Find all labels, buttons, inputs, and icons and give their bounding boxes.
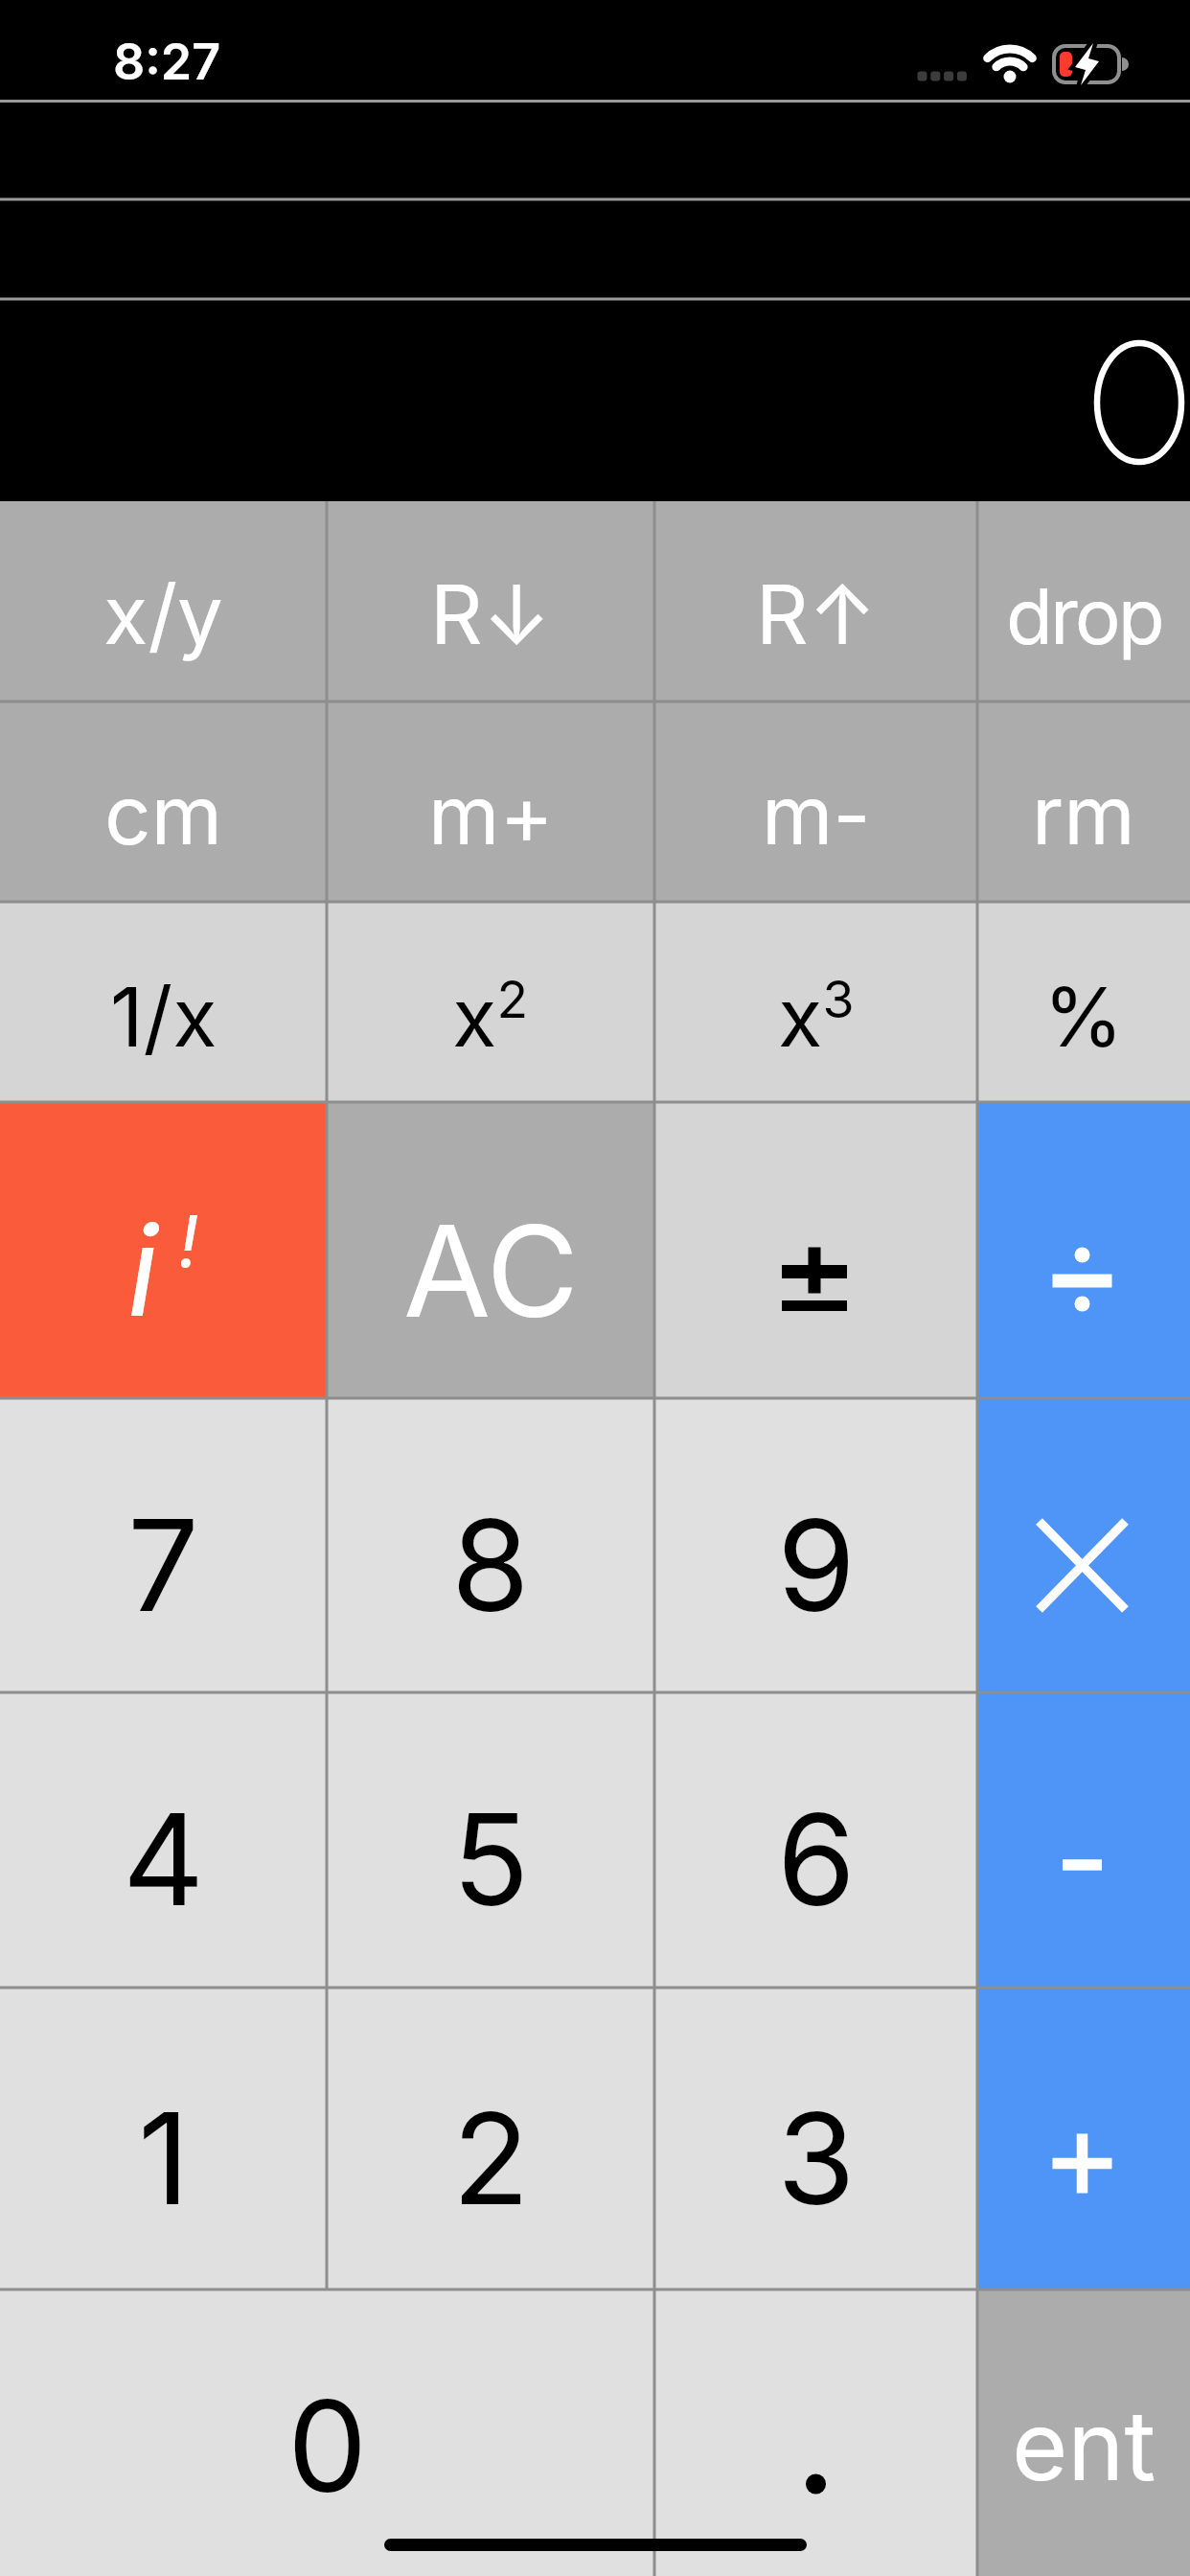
staticText: 9 bbox=[777, 1488, 856, 1642]
button[interactable] bbox=[977, 1692, 1190, 1988]
staticText: R↑ bbox=[756, 565, 877, 664]
staticText: 8:27 bbox=[113, 32, 221, 92]
button[interactable]: m+ bbox=[327, 701, 654, 902]
staticText: 8 bbox=[451, 1488, 530, 1642]
button[interactable]: 4 bbox=[0, 1692, 327, 1988]
staticText: AC bbox=[403, 1194, 579, 1347]
button[interactable]: 9 bbox=[654, 1398, 977, 1692]
staticText: % bbox=[1043, 968, 1124, 1067]
button[interactable]: ent bbox=[977, 2289, 1190, 2576]
button[interactable] bbox=[654, 1102, 977, 1398]
button[interactable]: AC bbox=[327, 1102, 654, 1398]
button[interactable]: cm bbox=[0, 701, 327, 902]
staticText: 7 bbox=[127, 1488, 199, 1642]
button[interactable]: 5 bbox=[327, 1692, 654, 1988]
staticText: x/y bbox=[103, 565, 223, 664]
button[interactable]: 1/x bbox=[0, 902, 327, 1102]
staticText: 4 bbox=[123, 1782, 205, 1936]
staticText: 2 bbox=[452, 2081, 530, 2235]
staticText: drop bbox=[1006, 569, 1162, 662]
staticText: 5 bbox=[452, 1782, 530, 1936]
button[interactable] bbox=[977, 1398, 1190, 1692]
button[interactable]: R↓ bbox=[327, 501, 654, 701]
button[interactable]: rm bbox=[977, 701, 1190, 902]
staticText: R↓ bbox=[430, 565, 551, 664]
button[interactable]: 0 bbox=[0, 2289, 654, 2576]
button[interactable] bbox=[977, 1102, 1190, 1398]
button[interactable]: 1 bbox=[0, 1988, 327, 2289]
button[interactable]: R↑ bbox=[654, 501, 977, 701]
button[interactable]: % bbox=[977, 902, 1190, 1102]
staticText: 1/x bbox=[110, 968, 217, 1067]
button[interactable]: 7 bbox=[0, 1398, 327, 1692]
staticText: 0 bbox=[287, 2369, 368, 2522]
staticText: 3 bbox=[777, 2081, 856, 2235]
button[interactable]: x3 bbox=[654, 902, 977, 1102]
button[interactable]: x2 bbox=[327, 902, 654, 1102]
staticText: m+ bbox=[428, 766, 554, 864]
button[interactable]: 3 bbox=[654, 1988, 977, 2289]
staticText: x3 bbox=[778, 968, 855, 1067]
button[interactable] bbox=[654, 2289, 977, 2576]
staticText: ent bbox=[1012, 2387, 1156, 2503]
button[interactable]: 8 bbox=[327, 1398, 654, 1692]
button[interactable]: 2 bbox=[327, 1988, 654, 2289]
staticText: 6 bbox=[777, 1782, 856, 1936]
staticText: 1 bbox=[138, 2081, 190, 2235]
staticText: cm bbox=[104, 766, 223, 864]
staticText: i ! bbox=[127, 1195, 199, 1345]
staticText: x2 bbox=[452, 968, 529, 1067]
button[interactable] bbox=[977, 1988, 1190, 2289]
button[interactable]: 6 bbox=[654, 1692, 977, 1988]
button[interactable]: m- bbox=[654, 701, 977, 902]
button[interactable]: i ! bbox=[0, 1102, 327, 1398]
button[interactable]: x/y bbox=[0, 501, 327, 701]
button[interactable]: drop bbox=[977, 501, 1190, 701]
staticText: m- bbox=[762, 766, 871, 864]
staticText: rm bbox=[1032, 766, 1135, 864]
